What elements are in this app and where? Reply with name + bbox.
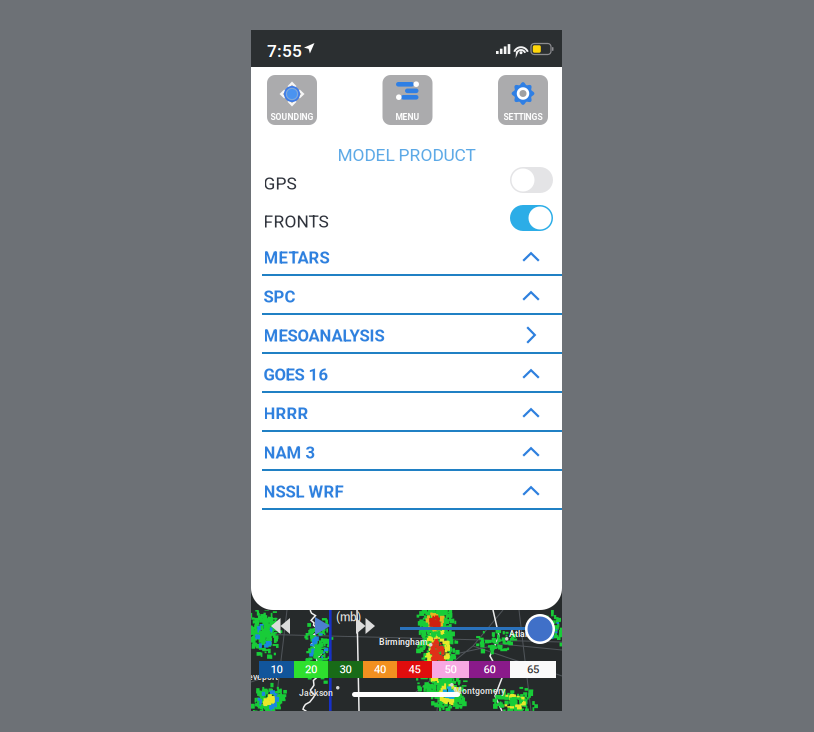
staticText: Maps [262,664,287,676]
button[interactable]: NSSL WRF [251,471,562,510]
button[interactable]: MESOANALYSIS [251,315,562,354]
staticText: NAM 3 [263,443,315,462]
staticText: 10 [270,663,282,676]
staticText: Montgomery [454,686,505,696]
staticText: (mb) [336,610,361,624]
button[interactable]: SOUNDING [267,75,317,125]
button[interactable]: Time slider [525,614,555,644]
staticText: G E O R G I A [504,670,549,679]
staticText: 20 [305,663,317,676]
staticText: 40 [374,663,386,676]
staticText: SETTINGS [503,112,542,122]
button[interactable]: GOES 16 [251,354,562,393]
staticText: 30 [339,663,351,676]
staticText: MESOANALYSIS [263,326,384,345]
button[interactable]: MENU [382,75,432,125]
button[interactable]: Previous frame [271,618,290,634]
staticText: 45 [408,663,420,676]
staticText: GOES 16 [263,365,328,384]
button[interactable]: HRRR [251,393,562,432]
staticText: FRONTS [263,211,328,232]
staticText: 65 [527,663,539,676]
staticText: SOUNDING [270,112,313,122]
staticText: 50 [444,663,456,676]
staticText: A L A B A M A [404,670,452,679]
staticText: Birmingham [379,637,428,647]
button[interactable]: GPS [251,161,562,199]
staticText: 7:55 [267,41,302,61]
button[interactable]: SETTINGS [498,75,548,125]
button[interactable]: Play [315,617,330,635]
staticText: GPS [263,173,296,194]
staticText: Jackson [299,688,333,698]
button[interactable]: NAM 3 [251,432,562,471]
staticText: HRRR [263,404,308,423]
staticText: eveport [248,672,278,682]
staticText: NSSL WRF [263,482,343,501]
button[interactable]: FRONTS [251,199,562,237]
staticText: MODEL PRODUCT [337,145,475,165]
staticText: 60 [483,663,495,676]
staticText: Atlanta [509,629,538,639]
staticText: MENU [395,112,419,122]
staticText: SPC [263,287,295,306]
button[interactable]: METARS [251,237,562,276]
button[interactable]: Next frame [356,618,375,634]
staticText: METARS [263,248,329,267]
button[interactable]: SPC [251,276,562,315]
